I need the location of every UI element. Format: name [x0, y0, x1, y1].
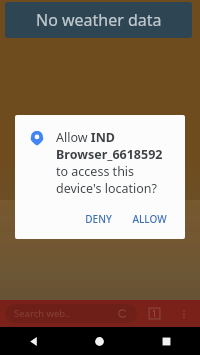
staticText: No weather data [36, 9, 162, 31]
staticText: Search web.. [14, 307, 71, 320]
button[interactable]: Recent apps [133, 327, 200, 355]
button[interactable]: ALLOW [124, 205, 175, 233]
button[interactable]: Search web.. [5, 304, 137, 323]
button[interactable]: No weather data [5, 2, 192, 38]
button[interactable]: Home [66, 327, 133, 355]
button[interactable]: More options [176, 306, 192, 322]
button[interactable]: DENY [77, 205, 120, 233]
staticText: 1 [152, 308, 157, 319]
staticText: ALLOW [132, 212, 167, 226]
staticText: DENY [85, 212, 112, 226]
staticText: Allow IND Browser_6618592 to access this… [56, 129, 173, 197]
button[interactable]: Tabs [147, 306, 162, 321]
button[interactable]: Back [0, 327, 66, 355]
